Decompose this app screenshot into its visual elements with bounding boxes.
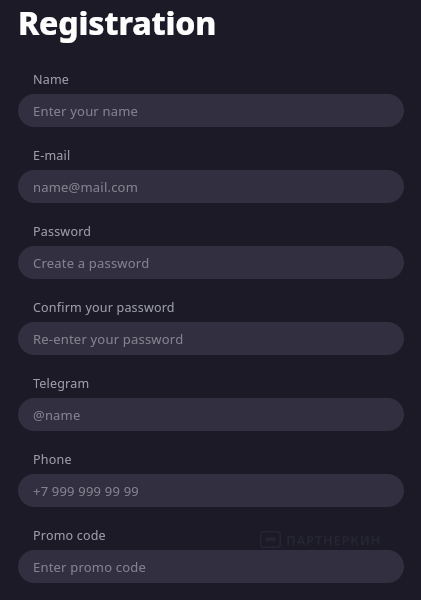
staticText: E-mail bbox=[33, 147, 71, 164]
button[interactable]: @name bbox=[18, 398, 404, 431]
button[interactable]: +7 999 999 99 99 bbox=[18, 474, 404, 507]
button[interactable]: Enter your name bbox=[18, 94, 404, 127]
staticText: Re-enter your password bbox=[33, 330, 184, 348]
staticText: ПАРТНЕРКИН bbox=[286, 531, 382, 549]
button[interactable]: Re-enter your password bbox=[18, 322, 404, 355]
staticText: +7 999 999 99 99 bbox=[33, 482, 139, 500]
staticText: Password bbox=[33, 223, 92, 240]
staticText: Enter promo code bbox=[33, 558, 147, 576]
staticText: Enter your name bbox=[33, 102, 139, 120]
button[interactable]: name@mail.com bbox=[18, 170, 404, 203]
staticText: Create a password bbox=[33, 254, 150, 272]
staticText: Confirm your password bbox=[33, 299, 175, 316]
staticText: Promo code bbox=[33, 527, 106, 544]
staticText: Name bbox=[33, 71, 70, 88]
staticText: Telegram bbox=[33, 375, 90, 392]
staticText: name@mail.com bbox=[33, 178, 139, 196]
staticText: Phone bbox=[33, 451, 72, 468]
staticText: Registration bbox=[18, 1, 217, 45]
staticText: @name bbox=[33, 406, 81, 424]
button[interactable]: Create a password bbox=[18, 246, 404, 279]
button[interactable]: Enter promo code bbox=[18, 550, 404, 583]
